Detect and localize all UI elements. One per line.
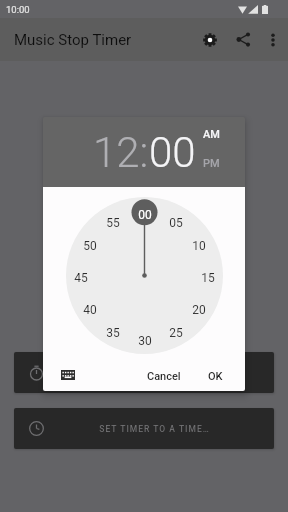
- button[interactable]: Settings: [193, 18, 226, 61]
- staticText: 15: [201, 271, 215, 285]
- staticText: Music Stop Timer: [14, 31, 132, 49]
- button[interactable]: 45: [67, 269, 95, 287]
- staticText: 20: [192, 303, 206, 317]
- staticText: 40: [83, 303, 97, 317]
- button[interactable]: Cancel: [139, 362, 189, 390]
- staticText: 05: [169, 216, 183, 230]
- staticText: 30: [138, 334, 152, 348]
- button[interactable]: SET TIMER FOR…: [14, 352, 274, 393]
- button[interactable]: 15: [194, 269, 222, 287]
- button[interactable]: OK: [200, 362, 231, 390]
- staticText: 35: [106, 326, 120, 340]
- button[interactable]: 30: [131, 332, 159, 350]
- button[interactable]: 12:: [93, 128, 149, 177]
- button[interactable]: AM: [203, 128, 220, 141]
- staticText: SET TIMER TO A TIME…: [99, 424, 210, 434]
- button[interactable]: 35: [99, 324, 127, 342]
- button[interactable]: 20: [185, 301, 213, 319]
- button[interactable]: 10: [185, 237, 213, 255]
- button[interactable]: Switch to keyboard input: [55, 361, 81, 389]
- button[interactable]: 00: [131, 206, 159, 224]
- button[interactable]: 50: [76, 237, 104, 255]
- button[interactable]: SET TIMER TO A TIME…: [14, 408, 274, 449]
- staticText: 45: [74, 271, 88, 285]
- staticText: 25: [169, 326, 183, 340]
- button[interactable]: 00: [149, 128, 196, 177]
- staticText: Cancel: [147, 370, 181, 383]
- button[interactable]: PM: [203, 157, 220, 170]
- button[interactable]: 25: [162, 324, 190, 342]
- staticText: 10: [192, 239, 206, 253]
- button[interactable]: More options: [259, 18, 287, 61]
- staticText: 55: [106, 216, 120, 230]
- staticText: 10:00: [6, 4, 30, 15]
- button[interactable]: Share: [227, 18, 259, 61]
- button[interactable]: 05: [162, 214, 190, 232]
- staticText: 50: [83, 239, 97, 253]
- button[interactable]: 40: [76, 301, 104, 319]
- staticText: OK: [208, 370, 223, 383]
- staticText: SET TIMER FOR…: [114, 368, 195, 378]
- button[interactable]: 55: [99, 214, 127, 232]
- staticText: 00: [138, 208, 152, 222]
